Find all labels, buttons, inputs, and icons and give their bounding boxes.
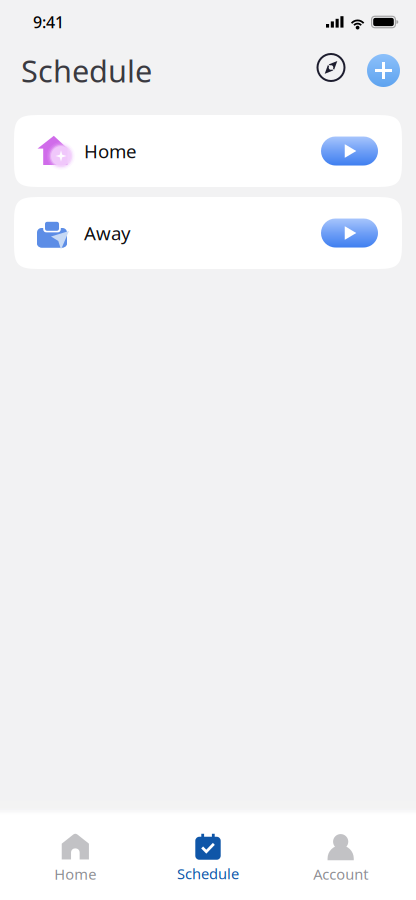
staticText: Schedule	[177, 864, 239, 883]
staticText: Home	[54, 864, 96, 884]
button[interactable]: Away	[14, 197, 402, 269]
button[interactable]: Account	[274, 821, 407, 894]
staticText: Home	[84, 139, 137, 163]
button[interactable]: Home	[14, 115, 402, 187]
button[interactable]: Schedule	[142, 822, 274, 893]
staticText: Schedule	[21, 50, 152, 91]
staticText: Account	[313, 864, 368, 884]
button[interactable]: Explore	[310, 49, 354, 91]
staticText: Away	[84, 221, 131, 245]
staticText: 9:41	[33, 11, 64, 33]
button[interactable]: Add	[354, 48, 403, 93]
button[interactable]: Home	[9, 821, 142, 894]
